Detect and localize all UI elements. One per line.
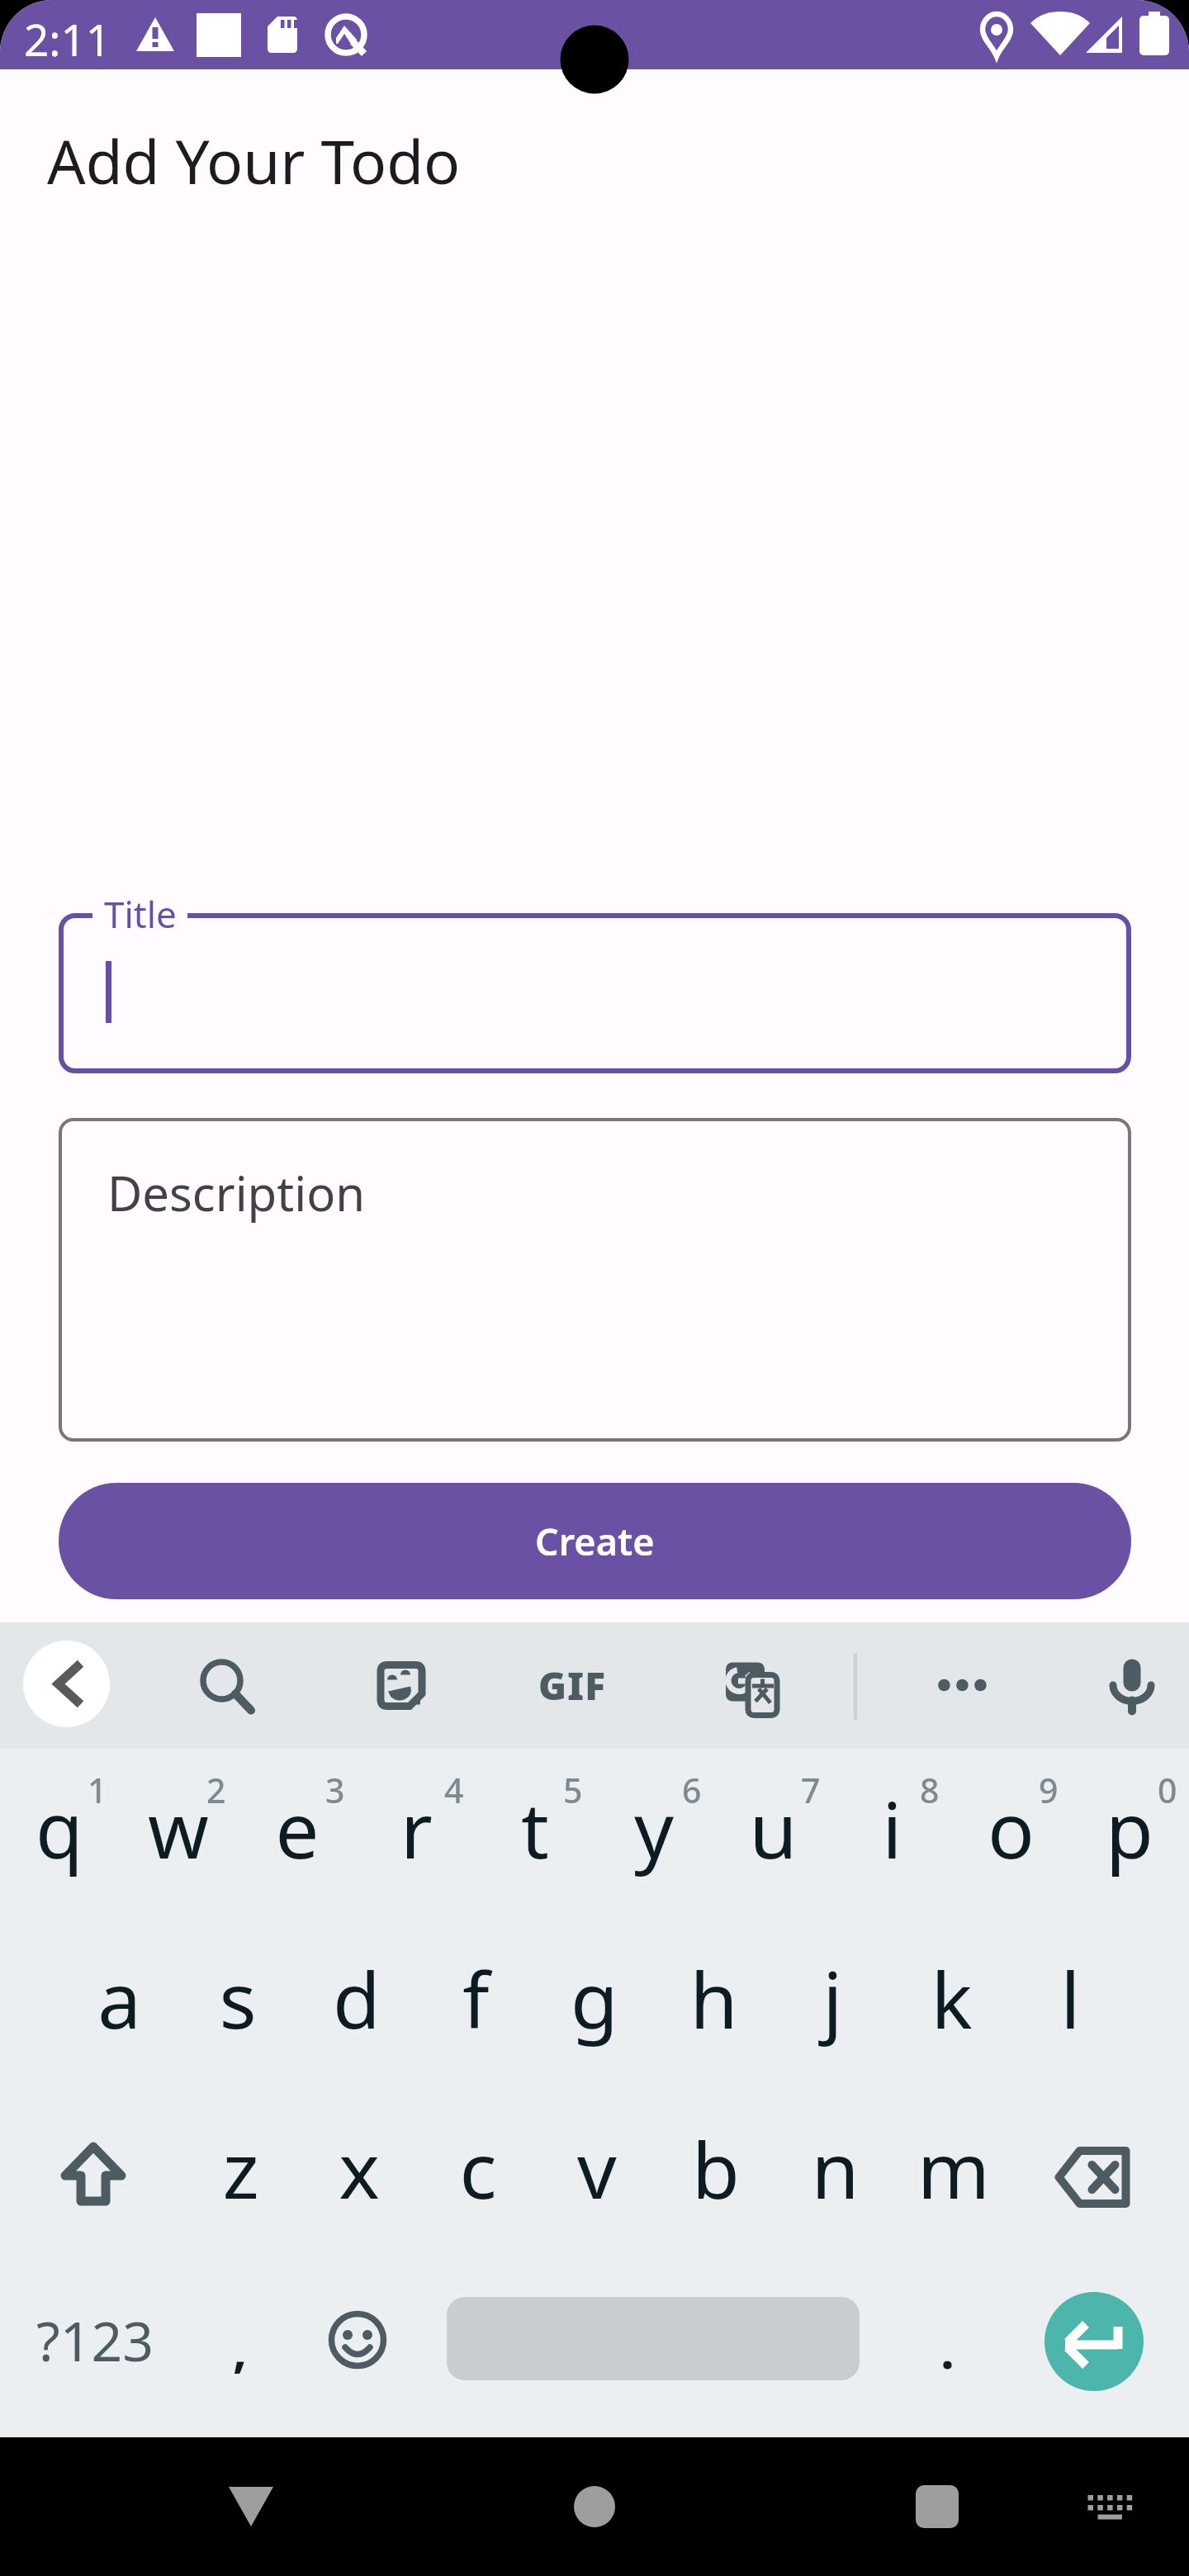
button[interactable]: Hide keyboard — [1068, 2465, 1150, 2548]
button[interactable]: k — [892, 1914, 1011, 2084]
button[interactable]: o — [951, 1744, 1070, 1914]
button[interactable]: , — [181, 2263, 300, 2433]
button[interactable]: Emoji — [298, 2255, 417, 2425]
button[interactable]: ?123 — [36, 2255, 154, 2425]
staticText: o — [988, 1776, 1035, 1882]
staticText: e — [275, 1776, 320, 1882]
button[interactable]: l — [1011, 1914, 1130, 2084]
button[interactable]: Back — [201, 2457, 301, 2556]
staticText: 3 — [325, 1767, 345, 1813]
button[interactable]: g — [535, 1914, 654, 2084]
staticText: q — [36, 1776, 83, 1882]
staticText: d — [333, 1946, 381, 2052]
staticText: g — [571, 1946, 618, 2052]
button[interactable]: e — [238, 1744, 357, 1914]
button[interactable]: f — [416, 1914, 535, 2084]
staticText: , — [233, 2314, 248, 2382]
staticText: w — [148, 1776, 209, 1882]
button[interactable]: Enter — [1045, 2292, 1144, 2391]
staticText: z — [222, 2116, 259, 2222]
staticText: p — [1106, 1776, 1153, 1882]
button[interactable]: q — [0, 1744, 119, 1914]
button[interactable]: c — [419, 2084, 538, 2254]
button[interactable]: x — [300, 2084, 419, 2254]
staticText: 0 — [1158, 1767, 1177, 1813]
button[interactable]: Back — [23, 1641, 110, 1727]
button[interactable]: d — [297, 1914, 416, 2084]
staticText: l — [1060, 1946, 1081, 2052]
staticText: 5 — [563, 1767, 583, 1813]
button[interactable]: p — [1070, 1744, 1189, 1914]
staticText: 9 — [1039, 1767, 1059, 1813]
staticText: . — [940, 2316, 955, 2384]
button[interactable]: w — [119, 1744, 238, 1914]
staticText: t — [521, 1776, 549, 1882]
staticText: k — [931, 1946, 973, 2052]
staticText: c — [459, 2116, 497, 2222]
button[interactable]: Shift — [34, 2089, 153, 2259]
staticText: 1 — [88, 1767, 107, 1813]
button[interactable]: h — [654, 1914, 773, 2084]
staticText: b — [692, 2116, 740, 2222]
staticText: m — [917, 2116, 990, 2222]
button[interactable]: b — [656, 2084, 775, 2254]
button[interactable]: n — [775, 2084, 894, 2254]
staticText: v — [577, 2116, 617, 2222]
staticText: Title — [104, 889, 177, 939]
staticText: Add Your Todo — [47, 120, 461, 201]
button[interactable]: t — [476, 1744, 594, 1914]
staticText: y — [634, 1776, 674, 1882]
button[interactable]: Backspace — [1036, 2089, 1155, 2259]
button[interactable]: a — [59, 1914, 178, 2084]
button[interactable]: Space — [447, 2297, 860, 2380]
button[interactable]: More options — [903, 1622, 1022, 1749]
staticText: 4 — [444, 1767, 464, 1813]
staticText: i — [882, 1776, 902, 1882]
button[interactable]: Stickers — [343, 1622, 462, 1749]
button[interactable]: j — [773, 1914, 892, 2084]
staticText: n — [811, 2116, 860, 2222]
staticText: x — [339, 2116, 380, 2222]
button[interactable]: Home — [545, 2457, 644, 2556]
staticText: Description — [107, 1160, 366, 1225]
staticText: s — [219, 1946, 257, 2052]
staticText: 2 — [206, 1767, 226, 1813]
staticText: u — [749, 1776, 798, 1882]
button[interactable]: . — [888, 2265, 1007, 2435]
staticText: a — [97, 1946, 141, 2052]
button[interactable]: Create — [59, 1483, 1131, 1599]
button[interactable]: Description — [59, 1118, 1131, 1442]
button[interactable]: Voice input — [1073, 1622, 1189, 1749]
staticText: Create — [535, 1516, 655, 1566]
staticText: r — [400, 1776, 433, 1882]
staticText: f — [462, 1946, 490, 2052]
button[interactable]: u — [713, 1744, 832, 1914]
button[interactable]: i — [832, 1744, 951, 1914]
staticText: 8 — [920, 1767, 940, 1813]
button[interactable]: Recent apps — [888, 2457, 987, 2556]
button[interactable]: y — [594, 1744, 713, 1914]
staticText: h — [689, 1946, 738, 2052]
button[interactable]: z — [181, 2084, 300, 2254]
staticText: GIF — [538, 1660, 607, 1712]
staticText: 2:11 — [24, 9, 111, 69]
button[interactable]: s — [178, 1914, 297, 2084]
button[interactable]: m — [894, 2084, 1013, 2254]
button[interactable]: Translate — [692, 1622, 811, 1749]
button[interactable]: Title — [59, 844, 1131, 1073]
button[interactable]: GIF — [513, 1622, 632, 1749]
button[interactable]: v — [538, 2084, 656, 2254]
staticText: 6 — [682, 1767, 702, 1813]
staticText: 7 — [801, 1767, 821, 1813]
button[interactable]: Search — [163, 1622, 282, 1749]
staticText: j — [822, 1946, 843, 2052]
button[interactable]: r — [357, 1744, 476, 1914]
staticText: ?123 — [36, 2303, 154, 2377]
